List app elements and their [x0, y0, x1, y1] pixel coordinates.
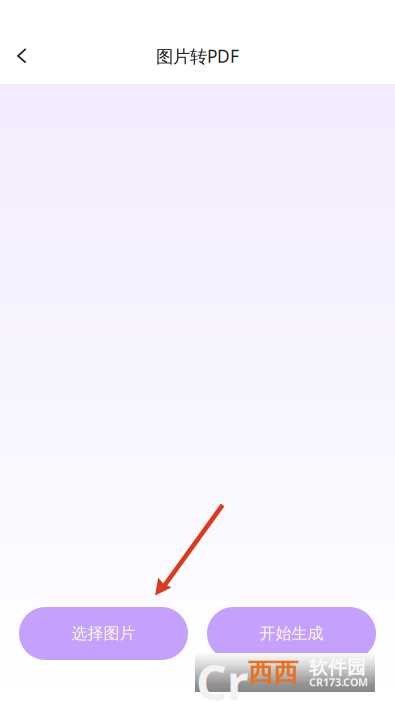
staticText: CR173.COM: [309, 675, 368, 689]
staticText: 软件园: [309, 656, 366, 679]
staticText: 图片转PDF: [156, 44, 239, 67]
button[interactable]: 选择图片: [19, 607, 188, 660]
button[interactable]: 开始生成: [207, 607, 376, 660]
staticText: 开始生成: [259, 624, 323, 643]
staticText: 选择图片: [71, 624, 135, 643]
staticText: 西西: [248, 657, 298, 688]
staticText: Cr: [196, 650, 248, 702]
button[interactable]: Back: [3, 37, 41, 75]
